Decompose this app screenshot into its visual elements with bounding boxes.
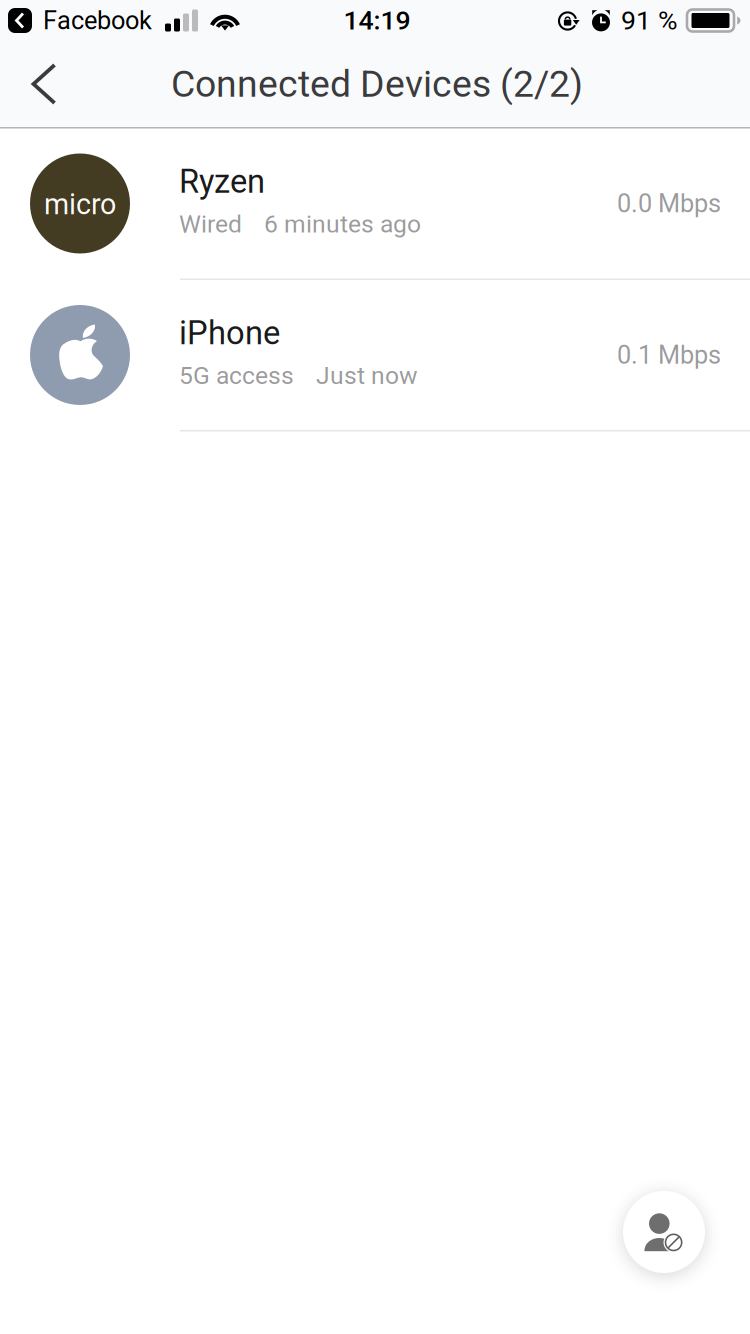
staticText: Wired: [179, 210, 242, 239]
staticText: Just now: [316, 361, 418, 390]
staticText: Ryzen: [179, 162, 265, 201]
staticText: Connected Devices (2/2): [171, 62, 583, 106]
button[interactable]: iPhone: [0, 280, 750, 430]
staticText: 6 minutes ago: [264, 210, 421, 239]
staticText: Facebook: [43, 6, 152, 35]
staticText: 91 %: [621, 5, 678, 36]
staticText: iPhone: [179, 314, 280, 352]
button[interactable]: micro: [0, 128, 750, 278]
staticText: 0.1 Mbps: [617, 340, 721, 370]
button[interactable]: Back: [0, 41, 81, 127]
staticText: 0.0 Mbps: [617, 189, 721, 218]
button[interactable]: Blocked devices: [623, 1191, 705, 1273]
staticText: micro: [44, 188, 116, 221]
staticText: 5G access: [179, 361, 294, 390]
staticText: 14:19: [343, 5, 410, 36]
